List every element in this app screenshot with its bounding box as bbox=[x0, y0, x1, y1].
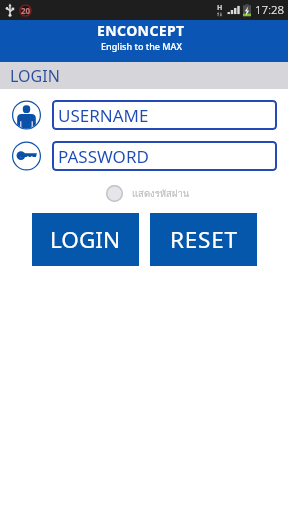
staticText: English to the MAX bbox=[101, 40, 182, 52]
button[interactable]: USERNAME bbox=[52, 100, 277, 130]
other: Username bbox=[11, 100, 42, 130]
staticText: USERNAME bbox=[58, 104, 149, 127]
staticText: RESET bbox=[170, 224, 238, 255]
staticText: 20 bbox=[21, 5, 31, 16]
staticText: 17:28 bbox=[255, 2, 285, 18]
button[interactable]: LOGIN bbox=[32, 213, 139, 266]
staticText: LOGIN bbox=[10, 65, 60, 87]
staticText: H bbox=[217, 3, 223, 13]
staticText: ENCONCEPT bbox=[97, 21, 185, 40]
staticText: LOGIN bbox=[50, 224, 121, 255]
other: Show password bbox=[106, 185, 123, 202]
button[interactable]: PASSWORD bbox=[52, 141, 277, 171]
button[interactable]: Show password bbox=[106, 185, 190, 202]
staticText: PASSWORD bbox=[58, 145, 149, 168]
staticText: แสดงรหัสผ่าน bbox=[132, 186, 190, 201]
other: Password bbox=[11, 141, 42, 171]
button[interactable]: RESET bbox=[150, 213, 257, 266]
